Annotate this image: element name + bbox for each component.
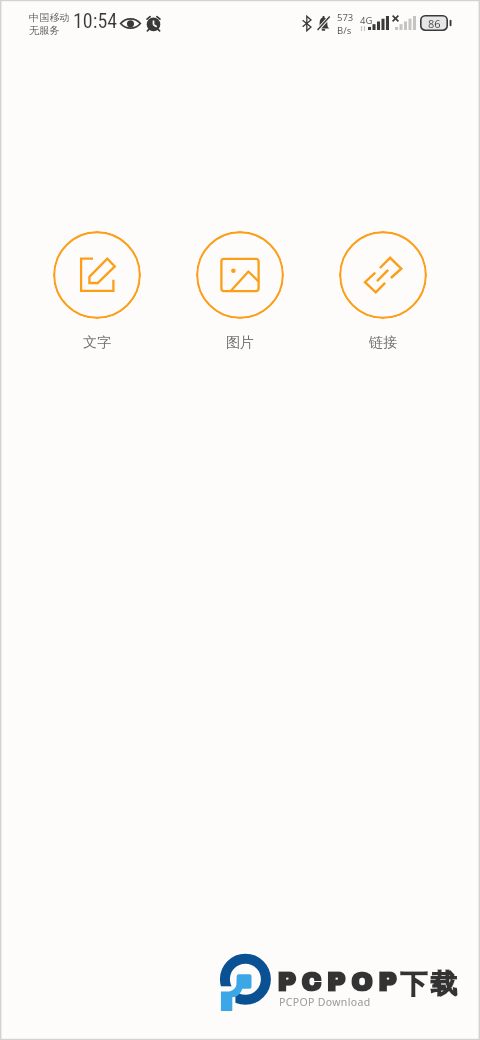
button[interactable]: Link xyxy=(339,231,427,352)
staticText: 文字 xyxy=(83,334,111,352)
button[interactable]: Image xyxy=(196,231,284,352)
staticText: 573 xyxy=(337,11,354,24)
staticText: 下载 xyxy=(400,967,462,1001)
staticText: 中国移动 xyxy=(29,11,70,24)
staticText: 10:54 xyxy=(73,9,118,32)
staticText: PCPOP xyxy=(277,968,402,996)
staticText: 86 xyxy=(428,16,441,31)
button[interactable]: Text xyxy=(53,231,141,352)
staticText: PCPOP Download xyxy=(279,995,371,1009)
staticText: 无服务 xyxy=(29,24,60,37)
staticText: 链接 xyxy=(369,334,397,352)
staticText: 图片 xyxy=(226,334,254,352)
staticText: 4G xyxy=(360,14,373,27)
staticText: B/s xyxy=(337,24,352,37)
